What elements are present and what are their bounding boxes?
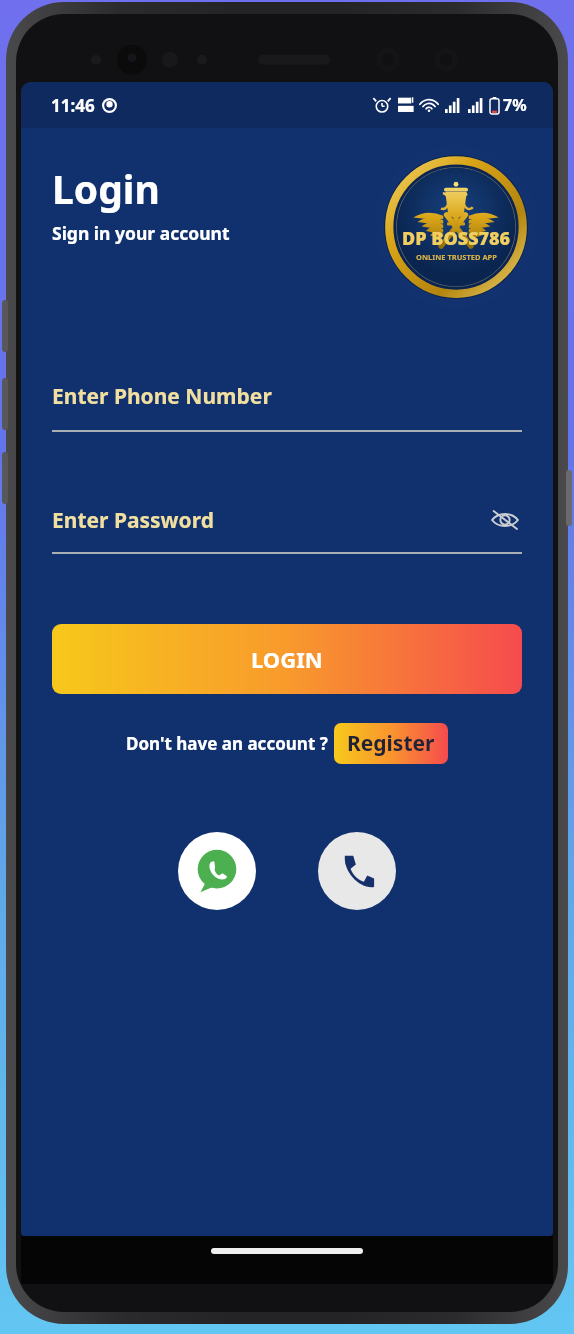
button[interactable]: Call <box>318 832 396 910</box>
staticText: LOGIN <box>251 644 323 674</box>
button[interactable]: Enter Phone Number <box>52 376 522 432</box>
staticText: Register <box>347 729 435 758</box>
staticText: DP BOSS786 <box>402 226 511 251</box>
staticText: Enter Phone Number <box>52 382 272 411</box>
button[interactable]: Register <box>334 723 448 764</box>
button[interactable]: LOGIN <box>52 624 522 694</box>
staticText: Don't have an account ? <box>126 732 328 755</box>
staticText: Sign in your account <box>52 221 230 245</box>
staticText: Login <box>52 162 160 215</box>
staticText: 7% <box>503 94 527 116</box>
staticText: 11:46 <box>51 94 95 117</box>
button[interactable]: WhatsApp <box>178 832 256 910</box>
staticText: ONLINE TRUSTED APP <box>416 252 497 262</box>
button[interactable]: Toggle password visibility <box>488 503 522 537</box>
staticText: Enter Password <box>52 506 214 535</box>
button[interactable]: Enter Password <box>52 500 522 554</box>
